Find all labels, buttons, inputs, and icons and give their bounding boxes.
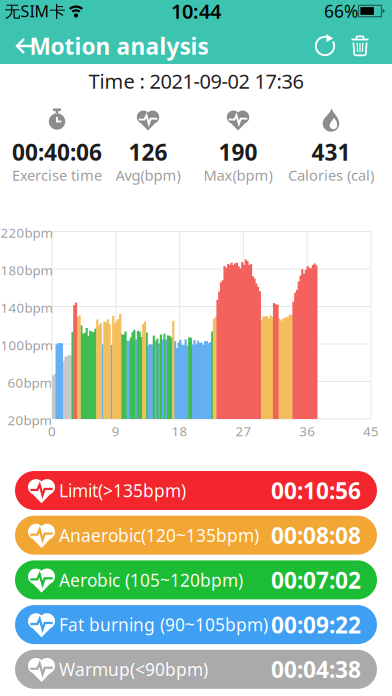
staticText: 45 bbox=[363, 422, 379, 440]
staticText: Time : 2021-09-02 17:36 bbox=[88, 68, 303, 94]
staticText: 20bpm bbox=[7, 411, 51, 429]
button[interactable]: Fat burning (90~105bpm) bbox=[15, 605, 377, 644]
staticText: 无SIM卡 bbox=[4, 0, 65, 22]
button[interactable]: Aerobic (105~120bpm) bbox=[15, 560, 377, 599]
staticText: 00:10:56 bbox=[271, 475, 361, 505]
staticText: Aerobic (105~120bpm) bbox=[59, 568, 243, 591]
staticText: 18 bbox=[172, 422, 188, 440]
staticText: 190 bbox=[218, 137, 257, 167]
staticText: 180bpm bbox=[0, 261, 52, 279]
staticText: Limit(>135bpm) bbox=[59, 479, 186, 502]
staticText: 00:07:02 bbox=[271, 565, 361, 595]
staticText: 00:09:22 bbox=[271, 609, 361, 640]
staticText: Fat burning (90~105bpm) bbox=[59, 613, 268, 636]
staticText: 126 bbox=[128, 137, 167, 167]
button[interactable]: Anaerobic(120~135bpm) bbox=[15, 516, 377, 555]
staticText: 36 bbox=[299, 422, 315, 440]
staticText: 60bpm bbox=[7, 374, 51, 391]
staticText: 00:40:06 bbox=[12, 137, 102, 167]
button[interactable]: Warmup(<90bpm) bbox=[15, 650, 377, 689]
staticText: Motion analysis bbox=[29, 31, 208, 61]
staticText: 431 bbox=[311, 137, 350, 167]
staticText: 27 bbox=[235, 422, 251, 440]
staticText: 220bpm bbox=[0, 224, 52, 241]
staticText: Calories (cal) bbox=[288, 165, 374, 185]
button[interactable]: Limit(>135bpm) bbox=[15, 471, 377, 510]
button[interactable]: Refresh bbox=[307, 28, 343, 64]
staticText: 00:08:08 bbox=[271, 520, 361, 550]
button[interactable]: Delete bbox=[342, 28, 378, 64]
staticText: Avg(bpm) bbox=[115, 165, 180, 185]
staticText: Max(bpm) bbox=[203, 165, 272, 185]
staticText: Exercise time bbox=[12, 165, 102, 185]
staticText: 10:44 bbox=[171, 0, 221, 24]
staticText: Anaerobic(120~135bpm) bbox=[59, 524, 259, 547]
staticText: 66% bbox=[324, 0, 358, 22]
staticText: 9 bbox=[112, 422, 120, 440]
staticText: Warmup(<90bpm) bbox=[59, 658, 208, 681]
staticText: 0 bbox=[48, 422, 56, 440]
staticText: 100bpm bbox=[0, 336, 52, 354]
button[interactable]: Back bbox=[0, 28, 44, 64]
staticText: 00:04:38 bbox=[271, 654, 361, 684]
staticText: 140bpm bbox=[0, 299, 52, 316]
